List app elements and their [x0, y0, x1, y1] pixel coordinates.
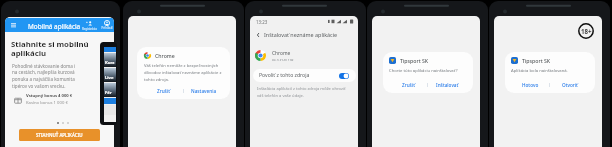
staticText: Aplikácia bola nainštalovaná.	[511, 68, 568, 74]
staticText: 86.0.4240.198	[272, 58, 294, 61]
staticText: Live	[105, 75, 114, 81]
button[interactable]: Nastavenia	[184, 86, 224, 95]
staticText: Registrácia	[82, 27, 97, 31]
staticText: Vstupný bonus 4 000 €	[26, 93, 73, 99]
button[interactable]: Menu	[5, 18, 114, 32]
staticText: Kurz	[105, 60, 115, 66]
staticText: 13:23	[256, 19, 268, 24]
staticText: Tipsport SK	[400, 57, 429, 64]
button[interactable]: 18 plus	[578, 23, 594, 39]
staticText: Zrušiť	[402, 82, 415, 88]
button[interactable]: Otvoriť	[550, 80, 589, 89]
staticText: Tipsport SK	[522, 57, 551, 64]
staticText: Nastavenia	[191, 88, 217, 94]
button[interactable]: Back	[253, 30, 262, 39]
staticText: 18+	[581, 27, 592, 35]
staticText: Inštalácia aplikácií z tohto zdroja môže…	[257, 86, 346, 98]
button[interactable]: Zrušiť	[389, 80, 427, 89]
staticText: Mobilná aplikácia	[28, 22, 81, 31]
button[interactable]: Povoliť z tohto zdroja	[253, 69, 356, 82]
button[interactable]: Registrácia	[81, 20, 97, 31]
staticText: Stiahnite si mobilnú aplikáciu	[11, 39, 89, 58]
staticText: STIAHNUŤ APLIKÁCIU	[36, 132, 83, 138]
button[interactable]: Menu	[9, 22, 18, 28]
staticText: Pohodlné stávkovanie doma i na cestách, …	[12, 63, 76, 89]
staticText: Otvoriť	[562, 82, 578, 88]
staticText: Inštalovať neznáme aplikácie	[264, 31, 338, 38]
staticText: Chrome	[155, 52, 175, 59]
button[interactable]: Zrušiť	[144, 86, 183, 95]
staticText: Kasíno bonus 1 000 €	[26, 100, 68, 106]
staticText: Váš telefón nemôže z bezpečnostných dôvo…	[144, 63, 224, 82]
button[interactable]: Prihlásiť	[99, 20, 114, 30]
staticText: Chrome	[272, 50, 291, 57]
staticText: Povoliť z tohto zdroja	[259, 72, 310, 79]
button[interactable]: Inštalovať	[428, 80, 467, 89]
staticText: Fér	[105, 90, 112, 96]
button[interactable]: Hotovo	[511, 80, 549, 89]
staticText: Prihlásiť	[101, 26, 113, 30]
button[interactable]: STIAHNUŤ APLIKÁCIU	[19, 129, 100, 141]
staticText: Zrušiť	[157, 88, 170, 94]
staticText: Inštalovať	[436, 82, 459, 88]
staticText: Chcete túto aplikáciu nainštalovať?	[389, 68, 458, 74]
staticText: Hotovo	[522, 82, 539, 88]
